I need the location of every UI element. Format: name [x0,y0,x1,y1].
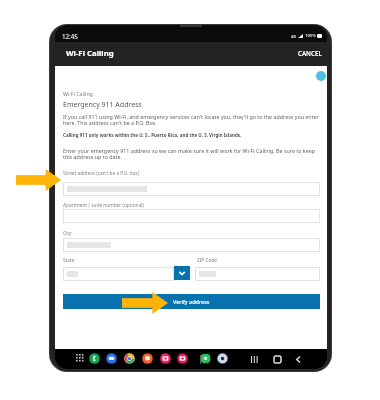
button[interactable] [63,209,320,223]
staticText: City [63,230,72,236]
button[interactable]: Recents [251,356,259,363]
button[interactable]: Phone [89,353,100,364]
staticText: If you call 911 using Wi-Fi, and emergen… [63,113,320,127]
button[interactable]: WhatsApp [200,353,211,364]
button[interactable]: Gallery [177,353,188,364]
button[interactable]: Select state [174,266,190,280]
button[interactable]: Home [274,356,281,363]
button[interactable]: Back [295,356,302,363]
button[interactable] [63,182,320,196]
staticText: State [63,257,75,263]
staticText: ZIP Code [197,257,217,263]
staticText: Apartment / suite number (optional) [63,202,144,208]
staticText: Wi-Fi Calling [63,90,93,97]
button[interactable] [195,267,320,281]
staticText: Street address (can't be a P.O. box) [63,170,140,176]
staticText: CANCEL [298,49,322,58]
staticText: Emergency 911 Address [63,100,142,110]
staticText: 100% [305,33,316,39]
staticText: Calling 911 only works within the U. S.,… [63,132,320,138]
button[interactable]: All apps [76,354,85,363]
button[interactable]: Chrome [124,353,135,364]
staticText: Enter your emergency 911 address so we c… [63,147,320,161]
button[interactable]: CANCEL [294,41,325,65]
button[interactable]: Settings [217,353,228,364]
button[interactable] [63,238,320,252]
button[interactable] [63,267,174,281]
staticText: 4G [291,34,296,39]
button[interactable]: Account [316,71,326,81]
button[interactable]: Verify address [63,294,320,309]
button[interactable]: Messages [106,353,117,364]
button[interactable]: App [142,353,153,364]
staticText: Verify address [173,298,210,305]
staticText: 12:45 [62,32,78,40]
staticText: Wi-Fi Calling [66,48,114,59]
button[interactable]: Camera [160,353,171,364]
